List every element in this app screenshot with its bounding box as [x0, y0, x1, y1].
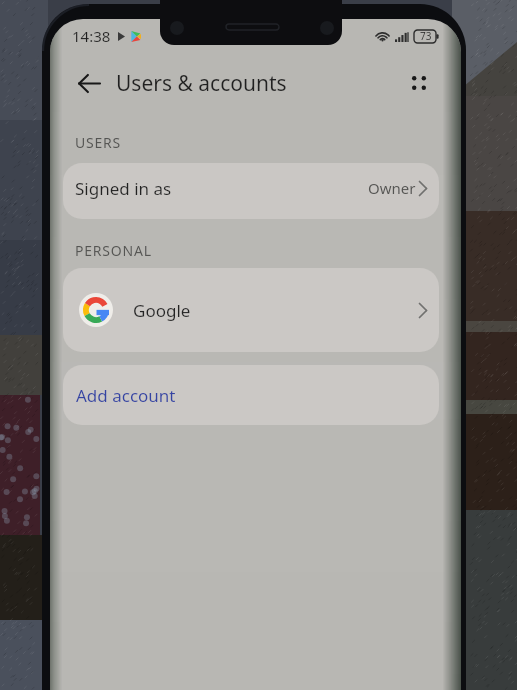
- button[interactable]: Add account: [63, 365, 439, 425]
- button[interactable]: Google: [63, 268, 439, 352]
- button[interactable]: Signed in as: [63, 163, 439, 219]
- staticText: Signed in as: [75, 177, 172, 200]
- staticText: USERS: [75, 133, 122, 152]
- staticText: PERSONAL: [75, 241, 152, 260]
- button[interactable]: More options: [402, 66, 436, 100]
- staticText: Add account: [76, 384, 176, 407]
- staticText: Owner: [368, 178, 416, 198]
- staticText: Google: [133, 299, 191, 322]
- button[interactable]: Back: [71, 65, 107, 101]
- staticText: Users & accounts: [116, 69, 287, 98]
- staticText: 14:38: [72, 26, 111, 46]
- staticText: 73: [420, 29, 432, 43]
